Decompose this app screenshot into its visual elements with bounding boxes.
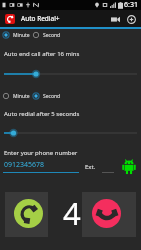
- staticText: Auto redial after 5 seconds: [4, 110, 80, 118]
- button[interactable]: Second: [30, 29, 61, 41]
- button[interactable]: Slider: [0, 66, 141, 82]
- button[interactable]: Call: [5, 192, 48, 237]
- staticText: Ext.: [85, 163, 96, 171]
- staticText: 4: [63, 192, 81, 234]
- button[interactable]: Slider: [0, 125, 141, 141]
- button[interactable]: Hang up: [82, 192, 136, 237]
- staticText: Second: [43, 32, 61, 39]
- staticText: Second: [43, 93, 61, 100]
- button[interactable]: Add: [124, 12, 138, 26]
- staticText: Minute: [13, 32, 30, 39]
- button[interactable]: Minute: [0, 29, 30, 41]
- staticText: Auto end call after 16 mins: [4, 50, 80, 58]
- button[interactable]: Minute: [0, 90, 30, 102]
- staticText: Auto Redial+: [21, 14, 60, 23]
- button[interactable]: Record call: [108, 12, 122, 26]
- button[interactable]: Second: [30, 90, 61, 102]
- staticText: 0912345678: [4, 160, 45, 170]
- staticText: Minute: [13, 93, 30, 100]
- staticText: 6:31: [124, 0, 138, 10]
- staticText: Enter your phone number: [4, 149, 78, 157]
